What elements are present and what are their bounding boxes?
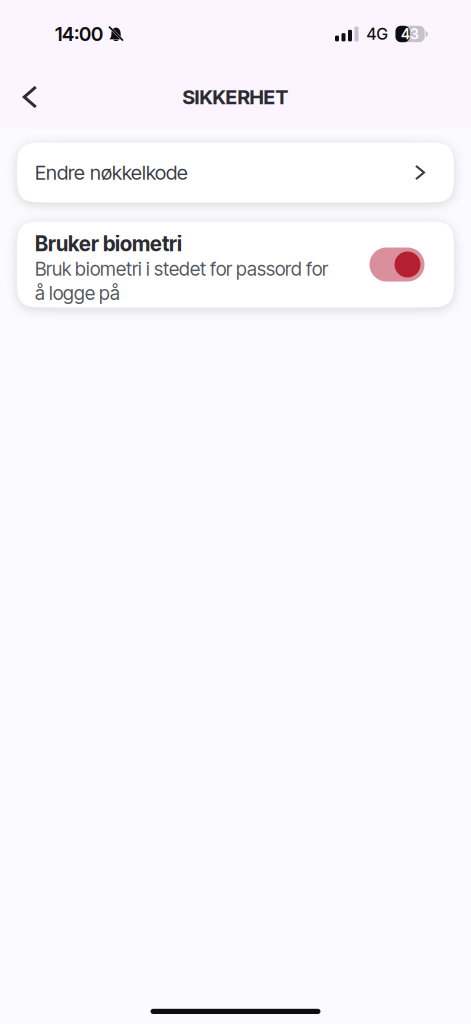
staticText: Bruk biometri i stedet for passord for å… bbox=[35, 257, 328, 305]
button[interactable]: Endre nøkkelkode bbox=[17, 142, 454, 202]
staticText: SIKKERHET bbox=[182, 85, 288, 109]
staticText: 4G bbox=[366, 24, 387, 44]
staticText: 43 bbox=[401, 25, 419, 43]
staticText: Bruker biometri bbox=[35, 231, 182, 256]
staticText: Endre nøkkelkode bbox=[35, 160, 188, 185]
button[interactable]: Back bbox=[0, 75, 48, 119]
staticText: 14:00 bbox=[55, 22, 103, 46]
button[interactable]: Bruker biometri bbox=[369, 247, 424, 281]
